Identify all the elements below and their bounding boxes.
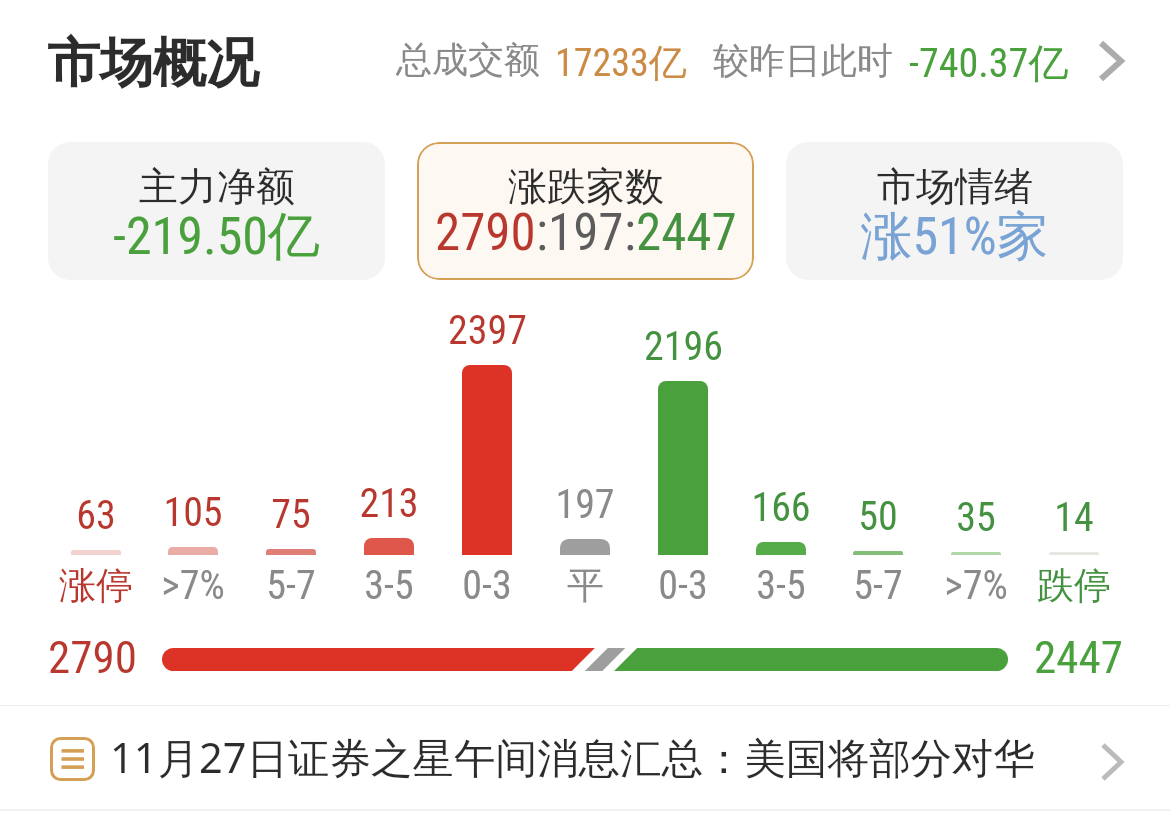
staticText: 50 [858, 493, 898, 540]
staticText: 总成交额 [396, 37, 540, 82]
staticText: 63 [76, 492, 116, 539]
button[interactable]: 主力净额 [48, 142, 385, 280]
staticText: 涨跌家数 [508, 162, 664, 211]
staticText: 197 [555, 481, 615, 528]
button[interactable]: 市场情绪 [786, 142, 1123, 280]
staticText: 平 [567, 562, 604, 609]
button[interactable]: 11月27日证券之星午间消息汇总：美国将部分对华 [0, 706, 1170, 808]
staticText: 0-3 [462, 562, 512, 609]
staticText: 213 [359, 480, 419, 527]
staticText: 2196 [644, 323, 723, 370]
staticText: 涨51%家 [860, 204, 1049, 270]
staticText: 涨停 [59, 562, 133, 609]
other: More market overview [1098, 40, 1128, 82]
staticText: 2790 [48, 631, 137, 684]
staticText: 17233亿 [555, 39, 687, 87]
staticText: 0-3 [658, 562, 708, 609]
staticText: 105 [163, 489, 223, 536]
button[interactable]: 市场概况 [0, 0, 1170, 124]
staticText: 166 [751, 484, 811, 531]
staticText: 市场情绪 [877, 162, 1033, 211]
staticText: 75 [271, 491, 311, 538]
staticText: 2397 [448, 307, 527, 354]
staticText: : [624, 203, 636, 263]
other: Open news article [1101, 743, 1127, 781]
staticText: : [536, 203, 548, 263]
staticText: 跌停 [1037, 562, 1111, 609]
staticText: 14 [1054, 494, 1094, 541]
staticText: 3-5 [756, 562, 806, 609]
staticText: 197 [548, 203, 624, 263]
staticText: 2790 [435, 203, 536, 263]
staticText: 较昨日此时 [713, 38, 893, 83]
staticText: 2447 [1034, 631, 1123, 684]
staticText: -219.50亿 [113, 204, 320, 270]
staticText: -740.37亿 [909, 38, 1069, 88]
staticText: 11月27日证券之星午间消息汇总：美国将部分对华 [110, 729, 1035, 786]
staticText: >7% [161, 562, 225, 609]
staticText: 2447 [636, 203, 737, 263]
staticText: 5-7 [266, 562, 316, 609]
staticText: 35 [956, 494, 996, 541]
staticText: 市场概况 [47, 30, 259, 97]
staticText: 主力净额 [139, 162, 295, 211]
staticText: 5-7 [853, 562, 903, 609]
button[interactable]: 涨跌家数 [417, 142, 754, 280]
staticText: 3-5 [364, 562, 414, 609]
staticText: >7% [944, 562, 1008, 609]
